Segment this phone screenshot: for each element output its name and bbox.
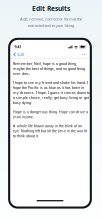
button[interactable]: Back to 3:20: [10, 51, 27, 58]
staticText: 3:20: [17, 52, 24, 57]
button[interactable]: More options: [79, 51, 90, 58]
staticText: A whole life blown away in the blink of …: [13, 123, 82, 128]
staticText: eye. Nothing left but all the time in th…: [13, 128, 87, 133]
staticText: ever dies.: [13, 71, 30, 76]
staticText: Add, remove, correct or format the: [20, 16, 82, 22]
staticText: to think about it.: [13, 133, 39, 138]
staticText: extracted text to your liking.: [27, 23, 74, 28]
staticText: Hope is a dangerous thing. Hope can driv…: [13, 109, 88, 114]
staticText: 9:41: [14, 44, 21, 49]
staticText: man insane.: [13, 114, 34, 119]
staticText: hope the Pacific is as blue as it has be…: [13, 85, 84, 90]
staticText: busy dying.: [13, 100, 32, 105]
staticText: my dreams. I hope. I guess it comes down…: [13, 90, 90, 95]
staticText: Remember, Neil, hope is a good thing,: [13, 61, 77, 66]
staticText: a simple choice, really: get busy living…: [13, 95, 89, 100]
staticText: Edit Results: [32, 4, 70, 13]
staticText: I hope to see my friend and shake his ha…: [13, 80, 88, 85]
staticText: maybe the best of things, and no good th…: [13, 66, 85, 71]
